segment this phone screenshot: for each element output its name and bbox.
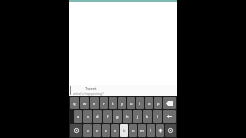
button[interactable]: Enter <box>163 110 176 123</box>
button[interactable]: Tweet <box>69 85 177 96</box>
button[interactable]: l <box>153 110 162 123</box>
button[interactable]: Backspace <box>163 97 176 109</box>
button[interactable]: e <box>90 97 99 109</box>
staticText: Tweet <box>85 86 97 91</box>
staticText: r <box>103 101 105 106</box>
staticText: h <box>126 114 129 119</box>
staticText: p <box>157 101 160 106</box>
staticText: ! <box>150 128 152 133</box>
staticText: c <box>105 128 107 133</box>
staticText: m <box>140 128 144 133</box>
button[interactable]: u <box>127 97 135 109</box>
staticText: s <box>87 114 89 119</box>
staticText: what's happening? <box>73 91 104 96</box>
button[interactable]: z <box>83 124 92 137</box>
staticText: f <box>107 114 109 119</box>
staticText: b <box>123 128 126 133</box>
staticText: t <box>112 101 114 106</box>
button[interactable]: t <box>109 97 117 109</box>
staticText: g <box>116 114 119 119</box>
staticText: o <box>148 101 151 106</box>
button[interactable]: ! <box>147 124 155 137</box>
button[interactable]: m <box>138 124 146 137</box>
staticText: z <box>87 128 89 133</box>
staticText: q <box>73 101 76 106</box>
staticText: k <box>146 114 149 119</box>
button[interactable]: g <box>113 110 122 123</box>
button[interactable]: p <box>154 97 162 109</box>
staticText: u <box>130 101 133 106</box>
button[interactable]: n <box>129 124 137 137</box>
button[interactable]: q <box>70 97 79 109</box>
staticText: j <box>137 114 139 119</box>
staticText: w <box>83 101 87 106</box>
staticText: x <box>96 128 99 133</box>
button[interactable]: v <box>111 124 119 137</box>
button[interactable]: w <box>80 97 89 109</box>
button[interactable]: s <box>83 110 92 123</box>
button[interactable]: j <box>133 110 142 123</box>
staticText: v <box>114 128 117 133</box>
button[interactable]: Emoji <box>70 124 82 137</box>
button[interactable]: k <box>143 110 152 123</box>
button[interactable]: x <box>93 124 101 137</box>
staticText: l <box>157 114 159 119</box>
staticText: e <box>93 101 96 106</box>
staticText: y <box>121 101 124 106</box>
button[interactable]: b <box>120 124 128 137</box>
button[interactable]: i <box>136 97 144 109</box>
button[interactable]: o <box>145 97 153 109</box>
staticText: d <box>96 114 99 119</box>
button[interactable]: y <box>118 97 126 109</box>
button[interactable]: r <box>100 97 108 109</box>
button[interactable]: h <box>123 110 132 123</box>
button[interactable]: d <box>93 110 102 123</box>
staticText: a <box>77 114 80 119</box>
staticText: i <box>139 101 141 106</box>
button[interactable]: a <box>74 110 82 123</box>
staticText: n <box>132 128 135 133</box>
button[interactable] <box>156 124 164 137</box>
button[interactable]: f <box>103 110 112 123</box>
button[interactable]: c <box>102 124 110 137</box>
button[interactable]: Settings <box>165 124 176 137</box>
